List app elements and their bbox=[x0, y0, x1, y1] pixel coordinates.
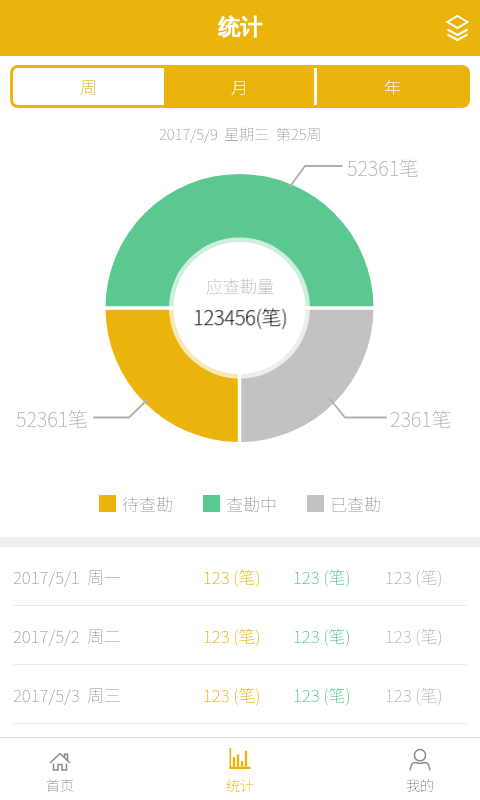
staticText: 123456(笔) bbox=[1, 302, 480, 331]
staticText: 123 (笔) bbox=[293, 623, 351, 648]
button[interactable]: 周 bbox=[13, 68, 164, 105]
staticText: 123 (笔) bbox=[385, 564, 443, 589]
staticText: 2017/5/3 周三 bbox=[13, 682, 122, 707]
staticText: 2017/5/1 周一 bbox=[13, 564, 122, 589]
staticText: 123 (笔) bbox=[385, 682, 443, 707]
staticText: 123 (笔) bbox=[385, 623, 443, 648]
button[interactable] bbox=[437, 8, 477, 48]
staticText: 123456(笔) bbox=[0, 302, 480, 331]
staticText: 查勘中 bbox=[226, 491, 277, 516]
staticText: 统计 bbox=[218, 14, 262, 42]
staticText: 2017/5/9 星期三 第25周 bbox=[159, 123, 322, 145]
button[interactable]: 月 bbox=[164, 68, 314, 105]
staticText: 123 (笔) bbox=[203, 564, 261, 589]
button[interactable]: 2017/5/2 周二 bbox=[0, 606, 480, 665]
staticText: 123456(笔) bbox=[0, 303, 480, 332]
button[interactable]: 我的 bbox=[385, 738, 455, 800]
staticText: 月 bbox=[231, 74, 248, 99]
staticText: 123 (笔) bbox=[203, 682, 261, 707]
button[interactable]: 2017/5/3 周三 bbox=[0, 665, 480, 724]
staticText: 待查勘 bbox=[122, 491, 173, 516]
staticText: 统计 bbox=[226, 775, 254, 795]
button[interactable]: 统计 bbox=[205, 738, 275, 800]
button[interactable]: 年 bbox=[317, 68, 467, 105]
staticText: 周 bbox=[80, 74, 97, 99]
staticText: 2017/5/2 周二 bbox=[13, 623, 122, 648]
staticText: 123 (笔) bbox=[203, 623, 261, 648]
staticText: 123 (笔) bbox=[293, 682, 351, 707]
staticText: 年 bbox=[384, 74, 401, 99]
button[interactable]: 2017/5/1 周一 bbox=[0, 547, 480, 606]
staticText: 已查勘 bbox=[330, 491, 381, 516]
staticText: 应查勘量 bbox=[0, 273, 480, 298]
staticText: 2361笔 bbox=[390, 404, 452, 433]
staticText: 52361笔 bbox=[16, 404, 89, 433]
staticText: 52361笔 bbox=[347, 153, 420, 182]
staticText: 我的 bbox=[406, 775, 434, 795]
staticText: 123 (笔) bbox=[293, 564, 351, 589]
staticText: 首页 bbox=[46, 775, 74, 795]
button[interactable]: 首页 bbox=[25, 738, 95, 800]
